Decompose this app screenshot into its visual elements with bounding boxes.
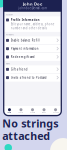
staticText: Home <box>7 112 11 113</box>
staticText: Profile Information <box>11 18 40 22</box>
button[interactable]: Inbox <box>38 106 50 116</box>
staticText: johndoe@email.com <box>18 6 46 10</box>
staticText: Cards <box>18 112 23 113</box>
button[interactable]: Home <box>4 106 15 116</box>
button[interactable]: Profile Information <box>4 16 61 32</box>
staticText: attached <box>2 129 50 143</box>
staticText: John Doe <box>23 1 42 6</box>
staticText: Gift a friend <box>11 68 28 71</box>
button[interactable]: Create <box>27 106 38 116</box>
staticText: Redeem gift card <box>11 55 35 59</box>
button[interactable]: Redeem gift card <box>4 53 61 61</box>
button[interactable]: Cards <box>15 106 27 116</box>
button[interactable]: Payment information <box>4 45 61 53</box>
staticText: Account <box>52 112 58 113</box>
staticText: ACCOUNT <box>6 14 13 16</box>
staticText: Edit your name, address, phone <box>11 22 55 26</box>
staticText: Inbox <box>42 112 46 113</box>
button[interactable]: Enable balance Refill <box>4 36 61 44</box>
staticText: Create <box>30 112 35 113</box>
staticText: PAYMENTS <box>6 34 14 36</box>
staticText: Payment information <box>11 47 39 50</box>
button[interactable]: Account <box>50 106 61 116</box>
button[interactable]: Invite a friend to Postcard <box>4 74 61 82</box>
staticText: Enable balance Refill <box>11 39 40 42</box>
button[interactable]: Gift a friend <box>4 65 61 73</box>
staticText: MORE <box>6 63 10 65</box>
staticText: number and other details <box>11 26 47 30</box>
staticText: No strings <box>2 116 58 130</box>
staticText: Invite a friend to Postcard <box>11 76 47 79</box>
